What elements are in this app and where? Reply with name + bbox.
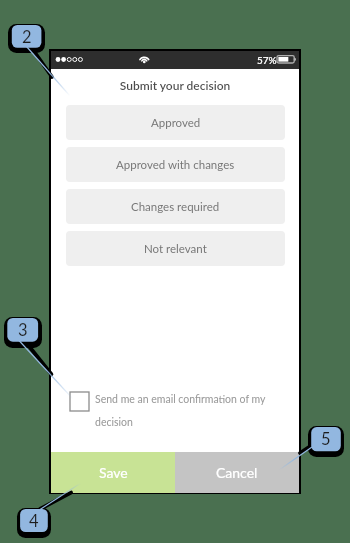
button[interactable]: Changes required [66, 189, 285, 224]
staticText: Changes required [131, 200, 220, 214]
staticText: Not relevant [144, 242, 207, 256]
staticText: 2 [22, 27, 32, 47]
button[interactable]: Cancel [175, 452, 299, 493]
button[interactable]: Step 2 [8, 24, 45, 53]
staticText: Send me an email confirmation of my deci… [95, 393, 270, 428]
staticText: Approved [151, 116, 201, 130]
button[interactable]: Step 5 [308, 426, 344, 457]
button[interactable]: Save [51, 452, 175, 493]
staticText: Cancel [216, 464, 258, 481]
button[interactable]: Step 3 [4, 317, 42, 348]
button[interactable]: Send me an email confirmation of my deci… [70, 392, 270, 427]
staticText: 3 [18, 320, 28, 340]
staticText: 4 [29, 511, 39, 531]
staticText: 5 [321, 429, 331, 449]
staticText: Save [99, 464, 128, 481]
button[interactable]: Approved with changes [66, 147, 285, 182]
button[interactable]: Not relevant [66, 231, 285, 266]
staticText: Approved with changes [116, 158, 235, 172]
button[interactable]: Step 4 [17, 508, 51, 538]
staticText: Submit your decision [51, 78, 299, 92]
staticText: 57% [257, 54, 277, 66]
button[interactable]: Approved [66, 105, 285, 140]
